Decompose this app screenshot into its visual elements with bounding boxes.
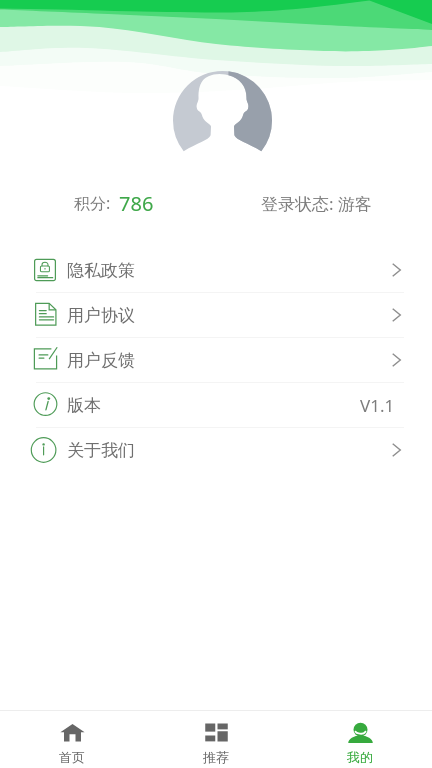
button[interactable]: 首页	[0, 711, 144, 768]
staticText: 用户反馈	[67, 350, 135, 371]
button[interactable]: 推荐	[144, 711, 288, 768]
button[interactable]: 版本	[0, 383, 432, 428]
button[interactable]: 我的	[288, 711, 432, 768]
button[interactable]: 隐私政策	[0, 248, 432, 293]
staticText: 版本	[67, 395, 101, 416]
button[interactable]: 用户协议	[0, 293, 432, 338]
staticText: 我的	[347, 749, 373, 765]
staticText: 隐私政策	[67, 260, 135, 281]
button[interactable]: 关于我们	[0, 428, 432, 472]
staticText: 关于我们	[67, 440, 135, 461]
staticText: 用户协议	[67, 305, 135, 326]
staticText: 登录状态: 游客	[261, 192, 372, 215]
staticText: 积分:	[74, 192, 111, 214]
staticText: 786	[119, 190, 154, 216]
staticText: 推荐	[203, 749, 229, 765]
staticText: V1.1	[360, 394, 395, 417]
button[interactable]: 用户反馈	[0, 338, 432, 383]
staticText: 首页	[59, 749, 85, 765]
